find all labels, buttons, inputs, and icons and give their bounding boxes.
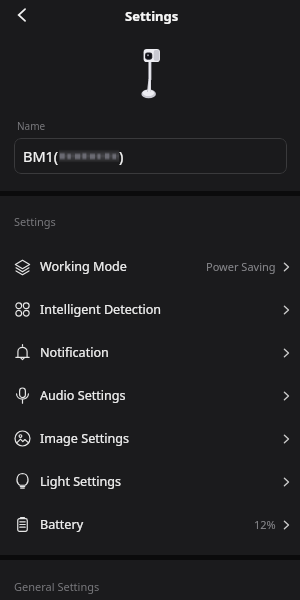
button[interactable]: BM1( — [14, 138, 287, 174]
staticText: General Settings — [14, 579, 100, 594]
button[interactable]: Light Settings — [0, 460, 300, 503]
staticText: Settings — [14, 214, 56, 229]
staticText: Intelligent Detection — [40, 301, 162, 318]
button[interactable]: Audio Settings — [0, 374, 300, 417]
button[interactable]: Working Mode — [0, 245, 300, 288]
button[interactable]: Battery — [0, 503, 300, 546]
staticText: 12% — [254, 517, 276, 532]
staticText: Power Saving — [206, 259, 276, 274]
staticText: Battery — [40, 516, 84, 533]
staticText: Notification — [40, 344, 109, 361]
button[interactable]: Back — [8, 1, 36, 29]
staticText: Light Settings — [40, 473, 122, 490]
button[interactable]: Notification — [0, 331, 300, 374]
staticText: Working Mode — [40, 258, 127, 275]
button[interactable]: Intelligent Detection — [0, 288, 300, 331]
staticText: Settings — [125, 7, 179, 25]
staticText: ) — [119, 146, 124, 166]
staticText: Name — [17, 119, 46, 133]
staticText: BM1( — [23, 146, 59, 166]
staticText: Audio Settings — [40, 387, 126, 404]
staticText: Image Settings — [40, 430, 130, 447]
button[interactable]: Image Settings — [0, 417, 300, 460]
